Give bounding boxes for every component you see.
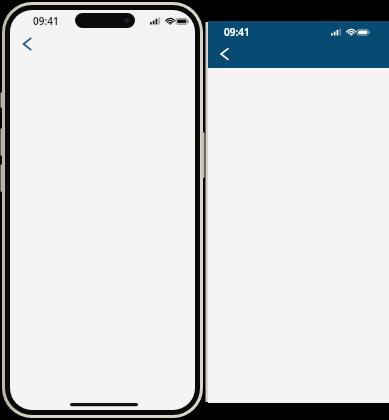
staticText: 09:41 xyxy=(33,14,59,28)
staticText: 09:41 xyxy=(224,25,250,39)
button[interactable]: Back xyxy=(16,33,38,55)
button[interactable]: Back xyxy=(213,43,235,65)
